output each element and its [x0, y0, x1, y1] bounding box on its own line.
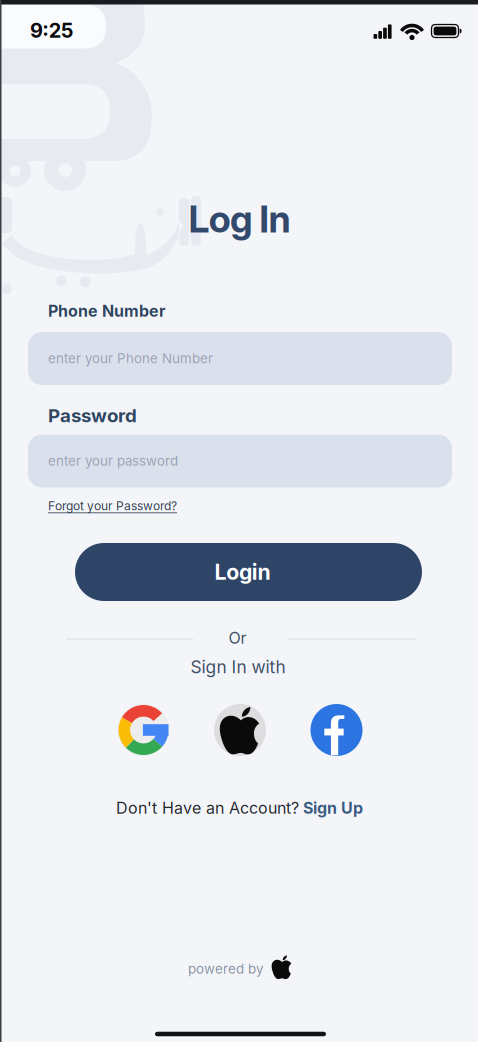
staticText: 9:25 — [30, 19, 73, 42]
staticText: enter your password — [48, 453, 178, 469]
staticText: Password — [48, 404, 137, 426]
staticText: Log In — [188, 197, 290, 241]
staticText: Forgot your Password? — [48, 499, 177, 513]
staticText: Don't Have an Account? — [116, 799, 299, 817]
button[interactable]: Sign in with Google — [117, 704, 169, 756]
button[interactable]: Sign in with Facebook — [310, 704, 362, 756]
button[interactable]: Sign in with Apple — [214, 704, 266, 756]
button[interactable]: Don't Have an Account? — [116, 799, 363, 817]
button[interactable]: Login — [75, 543, 422, 601]
staticText: enter your Phone Number — [48, 351, 213, 366]
staticText: Phone Number — [48, 302, 166, 320]
staticText: powered by — [188, 961, 263, 977]
staticText: Login — [215, 559, 270, 585]
staticText: Or — [228, 629, 246, 647]
staticText: Sign In with — [190, 657, 285, 677]
button[interactable]: Forgot your Password? — [0, 499, 478, 513]
staticText: Sign Up — [303, 799, 363, 817]
